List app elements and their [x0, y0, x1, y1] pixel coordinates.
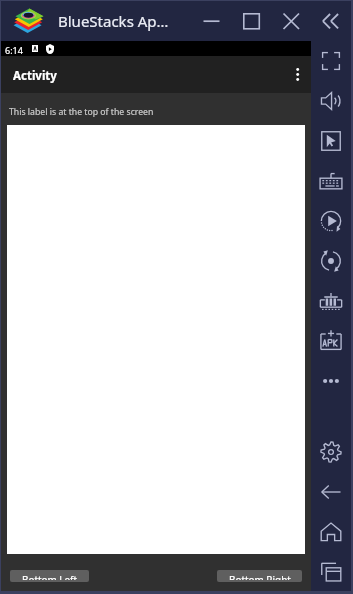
button[interactable]: Keyboard [317, 167, 345, 195]
button[interactable]: Rotate [317, 247, 345, 275]
button[interactable]: Back [317, 478, 345, 506]
button[interactable]: Collapse sidebar [316, 6, 346, 36]
button[interactable]: Settings [317, 438, 345, 466]
staticText: Bottom Left [22, 573, 78, 580]
staticText: Bottom Right [229, 573, 291, 580]
button[interactable]: Home [317, 518, 345, 546]
button[interactable]: Recents [317, 558, 345, 586]
button[interactable]: Game controls [317, 287, 345, 315]
button[interactable]: Volume [317, 87, 345, 115]
staticText: This label is at the top of the screen [9, 106, 154, 118]
staticText: BlueStacks Ap… [58, 11, 169, 31]
button[interactable]: Close [276, 6, 306, 36]
button[interactable]: Install APK [317, 327, 345, 355]
button[interactable]: Macro recorder [317, 207, 345, 235]
staticText: 6:14 [5, 44, 23, 56]
button[interactable]: More [317, 367, 345, 395]
button[interactable]: Maximize [236, 6, 266, 36]
button[interactable]: Bottom Left [10, 570, 89, 582]
button[interactable]: Bottom Right [217, 570, 302, 582]
button[interactable]: Cursor [317, 127, 345, 155]
button[interactable]: Fullscreen [317, 47, 345, 75]
staticText: Activity [13, 68, 57, 84]
button[interactable]: More options [285, 62, 310, 87]
button[interactable]: Minimize [196, 6, 226, 36]
